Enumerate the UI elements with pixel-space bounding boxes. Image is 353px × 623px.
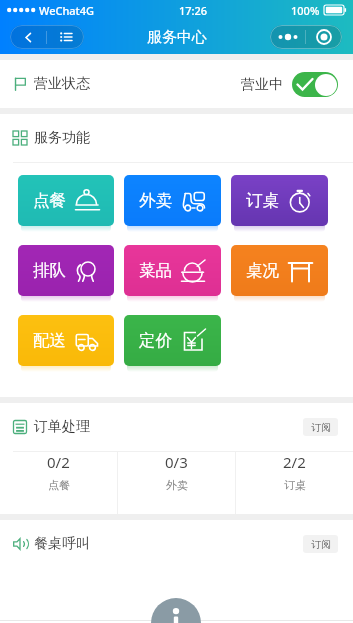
staticText: 点餐: [48, 478, 70, 492]
staticText: 17:26: [179, 3, 208, 18]
staticText: 桌况: [246, 260, 279, 281]
staticText: 营业状态: [34, 75, 90, 93]
staticText: 100%: [291, 3, 320, 18]
button[interactable]: 点餐: [18, 175, 114, 226]
staticText: 营业中: [241, 76, 283, 94]
staticText: 餐桌呼叫: [34, 535, 90, 553]
button[interactable]: Info: [151, 598, 201, 623]
staticText: 0/3: [165, 452, 188, 472]
button[interactable]: 排队: [18, 245, 114, 296]
staticText: 订阅: [311, 421, 331, 434]
button[interactable]: 桌况: [231, 245, 328, 296]
button[interactable]: Back: [10, 25, 84, 49]
button[interactable]: 2/2: [236, 452, 353, 492]
staticText: 0/2: [47, 452, 70, 472]
button[interactable]: 0/3: [118, 452, 235, 492]
staticText: 外卖: [166, 478, 188, 492]
staticText: 2/2: [283, 452, 306, 472]
staticText: 外卖: [139, 190, 172, 211]
staticText: 订单处理: [34, 418, 90, 436]
button[interactable]: 0/2: [0, 452, 117, 492]
staticText: 订桌: [284, 478, 306, 492]
staticText: 菜品: [139, 260, 172, 281]
staticText: 定价: [139, 330, 172, 351]
button[interactable]: 订阅: [303, 418, 338, 436]
staticText: 服务中心: [147, 28, 207, 47]
other: Back: [10, 32, 46, 43]
button[interactable]: 定价: [124, 315, 221, 366]
staticText: 点餐: [33, 190, 66, 211]
other: Menu: [47, 31, 84, 43]
staticText: WeChat4G: [39, 3, 95, 18]
button[interactable]: 外卖: [124, 175, 221, 226]
button[interactable]: 配送: [18, 315, 114, 366]
staticText: 配送: [33, 330, 66, 351]
button[interactable]: [292, 72, 338, 97]
staticText: 服务功能: [34, 129, 90, 147]
button[interactable]: 菜品: [124, 245, 221, 296]
button[interactable]: 订桌: [231, 175, 328, 226]
other: More: [270, 33, 305, 41]
button[interactable]: 订阅: [303, 535, 338, 553]
other: Close: [306, 29, 342, 45]
staticText: 订桌: [246, 190, 279, 211]
button[interactable]: More: [270, 25, 342, 49]
staticText: 订阅: [311, 538, 331, 551]
staticText: 排队: [33, 260, 66, 281]
